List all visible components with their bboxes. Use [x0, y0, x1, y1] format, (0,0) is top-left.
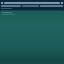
button[interactable]: Menu: [1, 2, 3, 4]
button[interactable]: [0, 11, 64, 64]
button[interactable]: [22, 5, 39, 7]
button[interactable]: Search: [61, 2, 63, 4]
button[interactable]: [40, 5, 63, 7]
button[interactable]: [1, 5, 21, 7]
button[interactable]: [4, 2, 60, 4]
